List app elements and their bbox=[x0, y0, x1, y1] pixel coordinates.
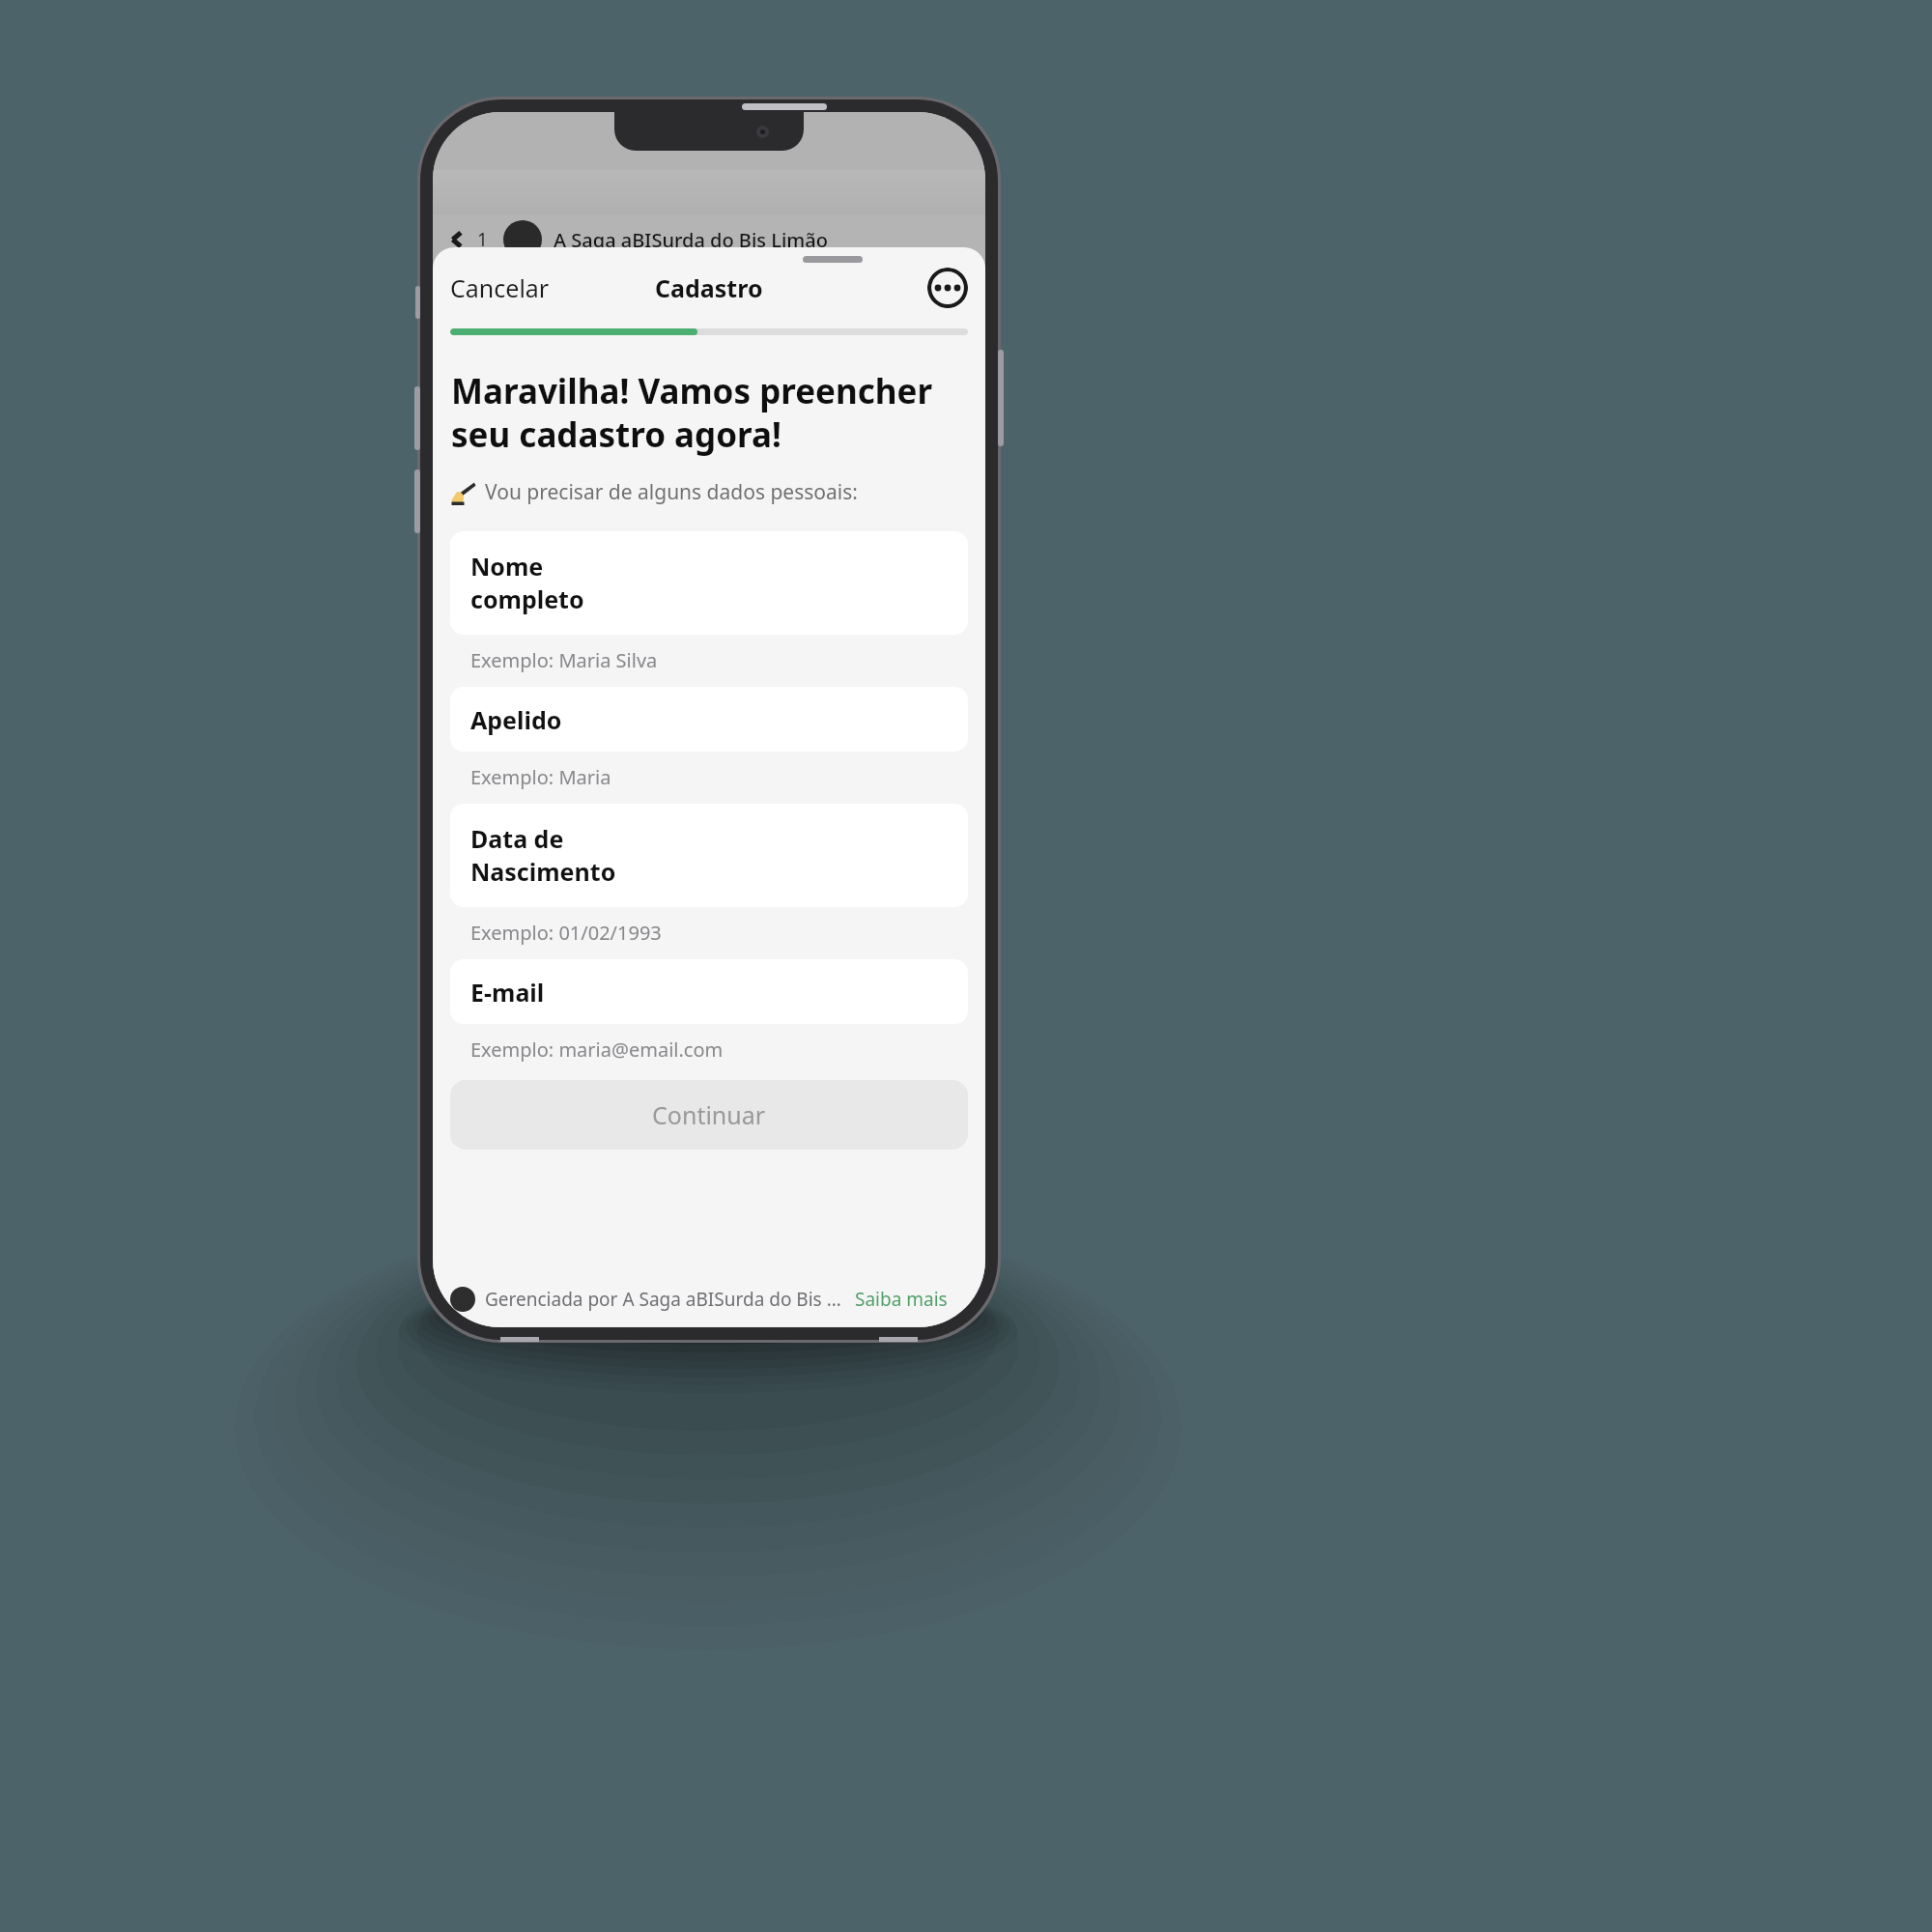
staticText: Cadastro bbox=[655, 271, 763, 304]
staticText: 1 bbox=[477, 227, 488, 252]
staticText: A Saga aBISurda do Bis Limão bbox=[554, 227, 828, 253]
staticText: Data de Nascimento bbox=[470, 822, 616, 889]
staticText: Apelido bbox=[470, 703, 562, 736]
button[interactable]: Saiba mais bbox=[855, 1287, 948, 1312]
staticText: Saiba mais bbox=[855, 1287, 948, 1312]
staticText: E-mail bbox=[470, 976, 545, 1009]
button[interactable]: Apelido bbox=[450, 687, 968, 752]
staticText: Exemplo: 01/02/1993 bbox=[470, 920, 662, 946]
button[interactable]: Mais opções bbox=[927, 268, 968, 308]
button[interactable]: Cancelar bbox=[439, 264, 561, 312]
staticText: Exemplo: Maria bbox=[470, 764, 611, 790]
button[interactable]: Data de Nascimento bbox=[450, 804, 968, 907]
staticText: Exemplo: maria@email.com bbox=[470, 1037, 724, 1063]
staticText: Maravilha! Vamos preencher seu cadastro … bbox=[451, 368, 933, 457]
button[interactable]: E-mail bbox=[450, 959, 968, 1024]
button[interactable]: Continuar bbox=[450, 1080, 968, 1150]
staticText: Continuar bbox=[652, 1098, 766, 1131]
staticText: Nome completo bbox=[470, 550, 584, 616]
button[interactable]: Nome completo bbox=[450, 531, 968, 635]
staticText: Gerenciada por A Saga aBISurda do Bis ..… bbox=[485, 1287, 841, 1312]
staticText: Cancelar bbox=[450, 271, 550, 304]
staticText: Exemplo: Maria Silva bbox=[470, 647, 658, 673]
staticText: Vou precisar de alguns dados pessoais: bbox=[485, 478, 858, 506]
